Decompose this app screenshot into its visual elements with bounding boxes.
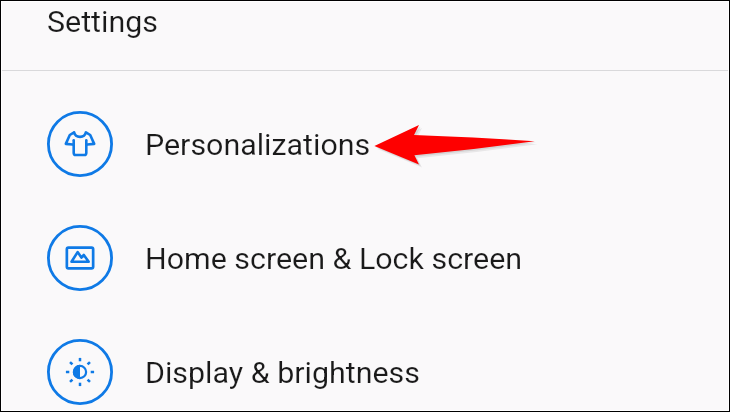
- other: Home screen and Lock screen: [44, 222, 116, 294]
- button[interactable]: Home screen and Lock screen: [2, 222, 728, 294]
- other: Display and brightness: [44, 336, 116, 408]
- button[interactable]: Personalizations: [2, 108, 728, 180]
- staticText: Home screen & Lock screen: [145, 241, 523, 277]
- staticText: Personalizations: [145, 127, 371, 163]
- staticText: Settings: [47, 4, 158, 40]
- staticText: Display & brightness: [145, 355, 420, 391]
- other: Personalizations: [44, 108, 116, 180]
- button[interactable]: Display and brightness: [2, 336, 728, 408]
